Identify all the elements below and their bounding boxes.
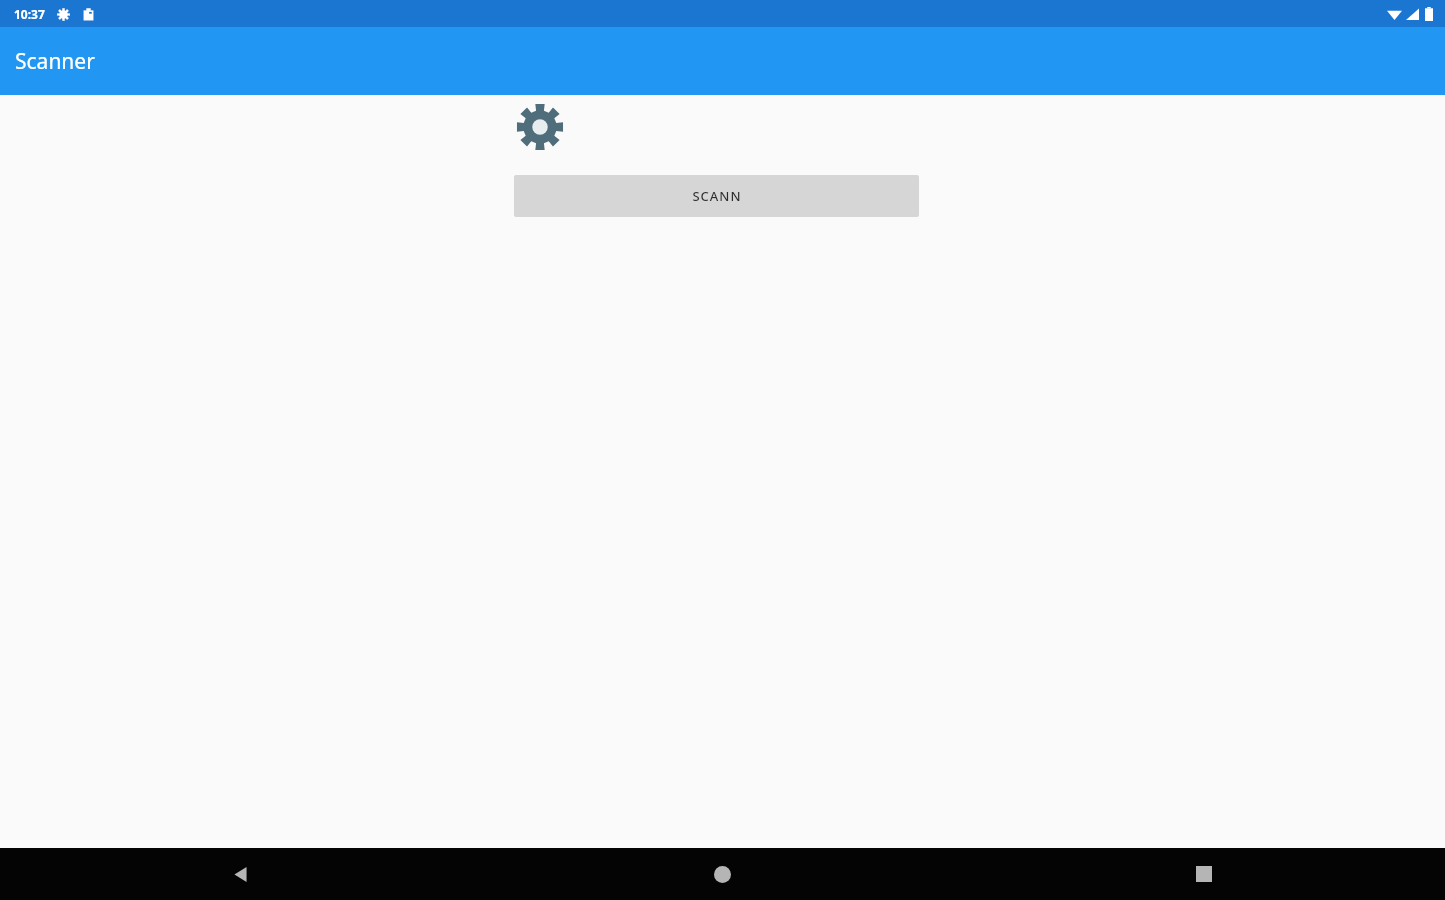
button[interactable]: Recent apps: [963, 848, 1445, 900]
staticText: Scanner: [15, 47, 95, 76]
button[interactable]: Back: [0, 848, 481, 900]
staticText: 10:37: [14, 6, 45, 22]
staticText: SCANN: [692, 187, 742, 205]
button[interactable]: Home: [481, 848, 963, 900]
button[interactable]: SCANN: [514, 175, 919, 217]
button[interactable]: Settings: [514, 101, 566, 153]
